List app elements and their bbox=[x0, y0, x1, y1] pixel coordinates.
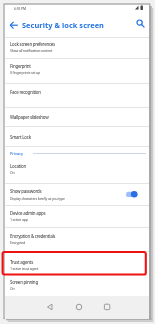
button[interactable] bbox=[8, 19, 21, 32]
staticText: On bbox=[10, 170, 15, 175]
staticText: Wallpaper slideshow bbox=[10, 114, 49, 120]
staticText: Device admin apps bbox=[10, 210, 46, 216]
button[interactable] bbox=[5, 37, 149, 58]
staticText: Show all notification content bbox=[10, 48, 53, 53]
button[interactable] bbox=[5, 107, 149, 126]
staticText: Lock screen preferences bbox=[10, 41, 55, 47]
staticText: 0 fingerprints set up bbox=[10, 70, 41, 75]
button[interactable] bbox=[5, 126, 149, 146]
staticText: Trust agents bbox=[10, 259, 34, 265]
button[interactable] bbox=[5, 227, 149, 251]
staticText: Location bbox=[10, 163, 26, 169]
staticText: On bbox=[10, 286, 15, 291]
staticText: Screen pinning bbox=[10, 279, 38, 285]
button[interactable] bbox=[5, 205, 149, 227]
staticText: Encryption & credentials bbox=[10, 233, 56, 239]
staticText: Show passwords bbox=[10, 188, 42, 194]
button[interactable] bbox=[5, 58, 149, 83]
button[interactable] bbox=[5, 183, 149, 205]
button[interactable] bbox=[5, 83, 149, 107]
staticText: Security & lock screen bbox=[22, 20, 104, 30]
staticText: 6:55 PM bbox=[14, 6, 27, 11]
button[interactable] bbox=[100, 301, 114, 313]
staticText: Fingerprint bbox=[10, 63, 31, 69]
button[interactable] bbox=[5, 160, 149, 181]
staticText: Privacy bbox=[10, 151, 23, 156]
staticText: Display characters briefly as you type bbox=[10, 196, 65, 201]
button[interactable] bbox=[43, 301, 57, 313]
button[interactable] bbox=[135, 18, 147, 30]
staticText: Smart Lock bbox=[10, 134, 31, 140]
staticText: Encrypted bbox=[10, 240, 26, 245]
button[interactable] bbox=[72, 301, 86, 313]
staticText: Face recognition bbox=[10, 89, 41, 95]
button[interactable] bbox=[125, 190, 144, 199]
button[interactable] bbox=[5, 251, 149, 275]
button[interactable] bbox=[5, 275, 149, 295]
staticText: 1 active app bbox=[10, 217, 28, 222]
staticText: 1 active trust agent bbox=[10, 266, 39, 271]
